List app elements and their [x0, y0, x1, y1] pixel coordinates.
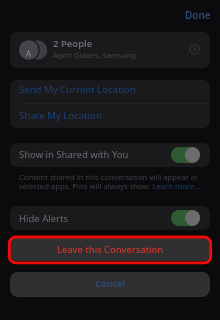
button[interactable]: Conversation details	[189, 44, 200, 55]
button[interactable]	[10, 32, 210, 68]
staticText: Send My Current Location	[19, 83, 136, 96]
staticText: A	[26, 48, 32, 59]
button[interactable]	[10, 206, 210, 230]
staticText: 2 People	[53, 37, 93, 50]
staticText: Leave this Conversation	[57, 243, 164, 256]
staticText: Share My Location	[19, 109, 102, 122]
staticText: Hide Alerts	[19, 212, 68, 225]
button[interactable]	[10, 103, 210, 128]
staticText: Content shared in this conversation will…	[19, 172, 198, 182]
button[interactable]: Group photo	[19, 40, 39, 60]
staticText: Show in Shared with You	[19, 148, 129, 161]
button[interactable]: Toggle setting	[171, 210, 200, 226]
button[interactable]	[10, 80, 210, 103]
button[interactable]	[10, 238, 210, 261]
staticText: Alphr Guides, Samsung	[53, 50, 136, 60]
button[interactable]: Toggle setting	[171, 147, 200, 163]
staticText: selected apps. Pins will always show. Le…	[19, 181, 201, 191]
button[interactable]	[10, 272, 210, 297]
staticText: Cancel	[95, 277, 126, 290]
button[interactable]	[180, 4, 214, 28]
button[interactable]	[10, 143, 210, 167]
staticText: Done	[185, 8, 211, 22]
button[interactable]: selected apps. Pins will always show. Le…	[19, 181, 201, 191]
